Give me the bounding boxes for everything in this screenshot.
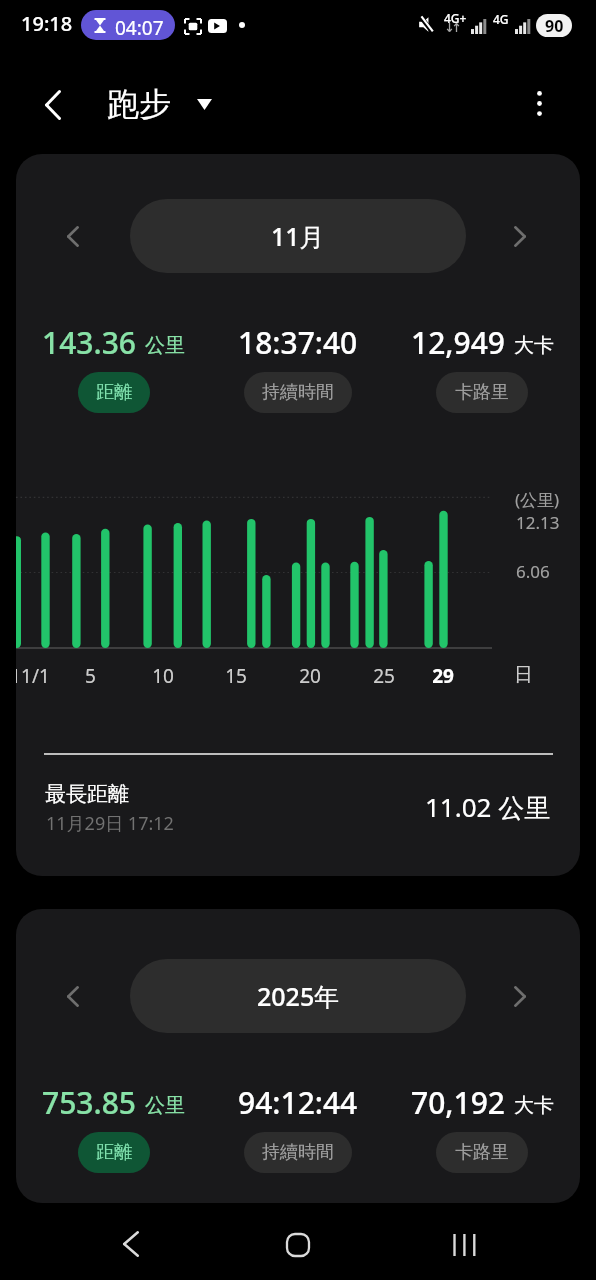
staticText: 15 xyxy=(225,663,247,689)
button[interactable]: Next xyxy=(500,976,540,1016)
button[interactable]: Recents xyxy=(441,1222,487,1268)
button[interactable]: 卡路里 xyxy=(455,1132,509,1173)
staticText: 卡路里 xyxy=(455,1141,509,1164)
button[interactable]: Previous xyxy=(53,216,93,256)
staticText: 18:37:40 xyxy=(238,322,358,358)
staticText: 25 xyxy=(373,663,395,689)
staticText: 6.06 xyxy=(516,560,550,583)
button[interactable]: 跑步 xyxy=(107,84,212,124)
staticText: 距離 xyxy=(96,1141,132,1164)
button[interactable]: Back xyxy=(108,1221,154,1267)
staticText: 持續時間 xyxy=(262,381,334,404)
staticText: 29 xyxy=(432,663,454,689)
staticText: 94:12:44 xyxy=(238,1082,358,1118)
staticText: 2025年 xyxy=(257,979,340,1013)
staticText: (公里) xyxy=(515,488,560,511)
button[interactable]: 卡路里 xyxy=(455,372,509,413)
button[interactable]: 11月 xyxy=(130,199,466,273)
staticText: 日 xyxy=(514,663,533,687)
staticText: 公里 xyxy=(145,1093,185,1118)
button[interactable]: 持續時間 xyxy=(262,1132,334,1173)
staticText: 12.13 xyxy=(516,511,560,534)
staticText: 5 xyxy=(85,663,96,689)
button[interactable]: 2025年 xyxy=(130,959,466,1033)
button[interactable]: 持續時間 xyxy=(262,372,334,413)
staticText: 公里 xyxy=(145,333,185,358)
staticText: 11.02 公里 xyxy=(425,789,551,825)
staticText: 11/1 xyxy=(16,663,50,689)
staticText: 20 xyxy=(299,663,321,689)
staticText: 10 xyxy=(152,663,174,689)
staticText: 最長距離 xyxy=(45,781,129,807)
staticText: 19:18 xyxy=(21,10,73,37)
staticText: 距離 xyxy=(96,381,132,404)
staticText: 143.36 xyxy=(42,322,136,358)
staticText: 70,192 xyxy=(411,1082,505,1118)
staticText: 11月 xyxy=(271,219,325,253)
button[interactable]: Home xyxy=(275,1222,321,1268)
staticText: 卡路里 xyxy=(455,381,509,404)
staticText: 持續時間 xyxy=(262,1141,334,1164)
staticText: 12,949 xyxy=(411,322,505,358)
staticText: 大卡 xyxy=(514,1093,554,1118)
staticText: 04:07 xyxy=(115,15,164,40)
staticText: 4G+ xyxy=(444,10,467,26)
staticText: 4G xyxy=(493,11,509,27)
staticText: 跑步 xyxy=(107,84,171,124)
staticText: 11月29日 17:12 xyxy=(46,811,174,836)
button[interactable]: 距離 xyxy=(96,1132,132,1173)
button[interactable]: More options xyxy=(517,81,562,126)
staticText: 90 xyxy=(545,15,564,37)
staticText: 大卡 xyxy=(514,333,554,358)
staticText: 753.85 xyxy=(42,1082,136,1118)
button[interactable]: 距離 xyxy=(96,372,132,413)
button[interactable]: Previous xyxy=(53,976,93,1016)
button[interactable]: Next xyxy=(500,216,540,256)
button[interactable]: Back xyxy=(30,82,75,127)
